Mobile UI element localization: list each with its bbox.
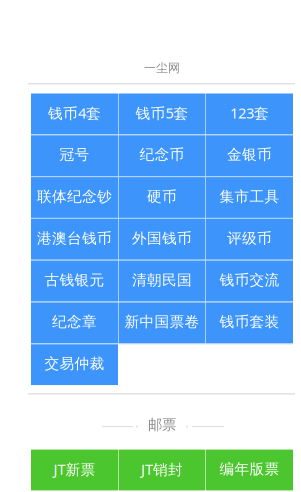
staticText: 集市工具: [219, 187, 279, 206]
button[interactable]: 纪念币: [119, 135, 205, 176]
staticText: 钱币交流: [219, 271, 279, 289]
button[interactable]: 古钱银元: [31, 261, 118, 301]
button[interactable]: 清朝民国: [119, 261, 205, 301]
button[interactable]: 编年版票: [206, 450, 293, 490]
button[interactable]: 集市工具: [206, 177, 293, 218]
staticText: 一尘网: [144, 60, 180, 75]
staticText: 港澳台钱币: [37, 229, 112, 248]
staticText: 外国钱币: [132, 229, 192, 248]
button[interactable]: 金银币: [206, 135, 293, 176]
staticText: 123套: [230, 103, 269, 123]
staticText: 纪念章: [52, 313, 97, 331]
button[interactable]: 钱币交流: [206, 261, 293, 301]
staticText: JT销封: [141, 459, 183, 479]
button[interactable]: 钱币5套: [119, 93, 205, 134]
button[interactable]: 钱币套装: [206, 302, 293, 343]
staticText: 钱币4套: [48, 103, 101, 123]
staticText: 交易仲裁: [44, 354, 104, 373]
staticText: 联体纪念钞: [37, 187, 112, 206]
staticText: 纪念币: [139, 145, 184, 164]
staticText: 古钱银元: [44, 271, 104, 289]
staticText: 邮票: [148, 415, 176, 434]
staticText: 金银币: [227, 145, 272, 164]
staticText: 钱币套装: [219, 313, 279, 331]
staticText: 硬币: [147, 187, 177, 206]
button[interactable]: JT新票: [31, 450, 118, 490]
button[interactable]: 港澳台钱币: [31, 219, 118, 260]
staticText: JT新票: [53, 459, 95, 479]
button[interactable]: JT销封: [119, 450, 205, 490]
staticText: 编年版票: [219, 460, 279, 478]
staticText: 新中国票卷: [124, 313, 199, 331]
staticText: 冠号: [59, 145, 89, 164]
staticText: 清朝民国: [132, 271, 192, 289]
button[interactable]: 钱币4套: [31, 93, 118, 134]
staticText: 评级币: [227, 229, 272, 248]
button[interactable]: 硬币: [119, 177, 205, 218]
button[interactable]: 纪念章: [31, 302, 118, 343]
button[interactable]: 交易仲裁: [31, 344, 118, 385]
button[interactable]: 新中国票卷: [119, 302, 205, 343]
button[interactable]: 联体纪念钞: [31, 177, 118, 218]
button[interactable]: 评级币: [206, 219, 293, 260]
staticText: 钱币5套: [135, 103, 188, 123]
button[interactable]: 冠号: [31, 135, 118, 176]
button[interactable]: 123套: [206, 93, 293, 134]
button[interactable]: 外国钱币: [119, 219, 205, 260]
